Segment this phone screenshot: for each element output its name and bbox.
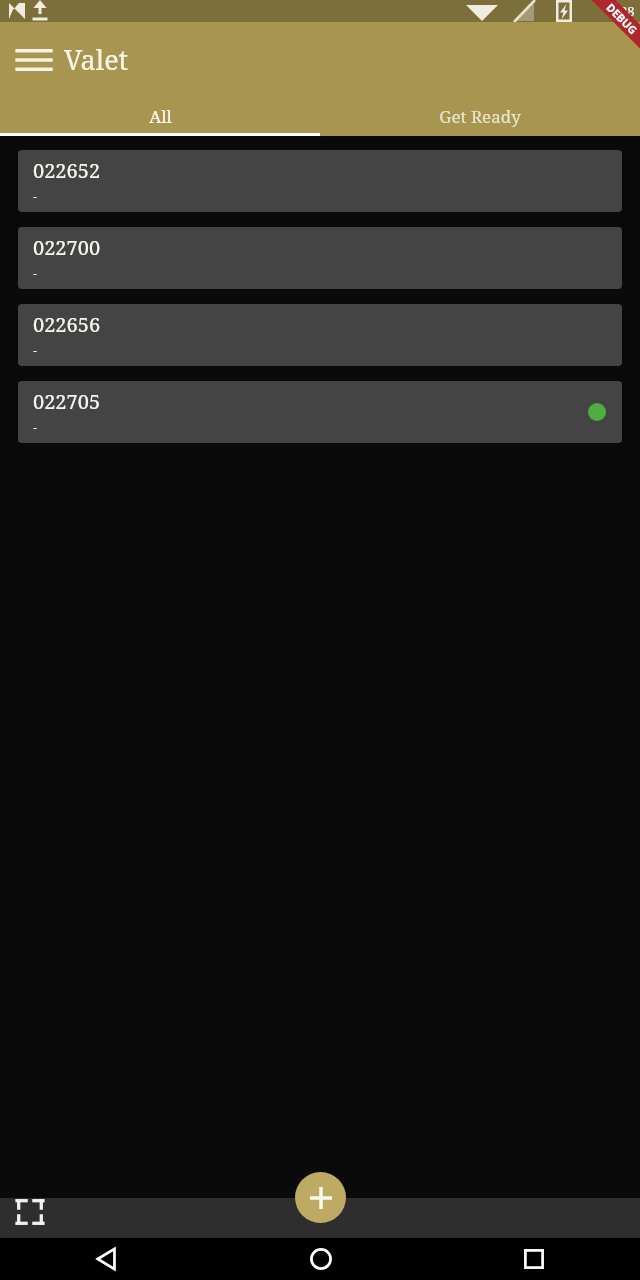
staticText: -	[33, 187, 38, 205]
button[interactable]: Recent apps	[427, 1238, 640, 1280]
button[interactable]: Add	[295, 1172, 346, 1223]
staticText: Get Ready	[439, 105, 521, 128]
staticText: Valet	[64, 41, 129, 78]
button[interactable]: 022705	[18, 381, 622, 443]
staticText: 022656	[33, 311, 101, 338]
button[interactable]: Back	[0, 1238, 214, 1280]
button[interactable]: 022656	[18, 304, 622, 366]
staticText: 022705	[33, 388, 101, 415]
staticText: 2:28	[609, 2, 635, 20]
button[interactable]: Get Ready	[320, 97, 640, 136]
button[interactable]: 022652	[18, 150, 622, 212]
staticText: 022652	[33, 157, 101, 184]
staticText: DEBUG	[603, 0, 640, 37]
button[interactable]: Home	[214, 1238, 427, 1280]
button[interactable]: Open navigation menu	[11, 37, 56, 82]
button[interactable]: All	[0, 97, 320, 136]
staticText: -	[33, 264, 38, 282]
staticText: -	[33, 418, 38, 436]
button[interactable]: Scan	[10, 1192, 50, 1232]
staticText: All	[149, 105, 172, 128]
staticText: 022700	[33, 234, 101, 261]
staticText: -	[33, 341, 38, 359]
button[interactable]: 022700	[18, 227, 622, 289]
